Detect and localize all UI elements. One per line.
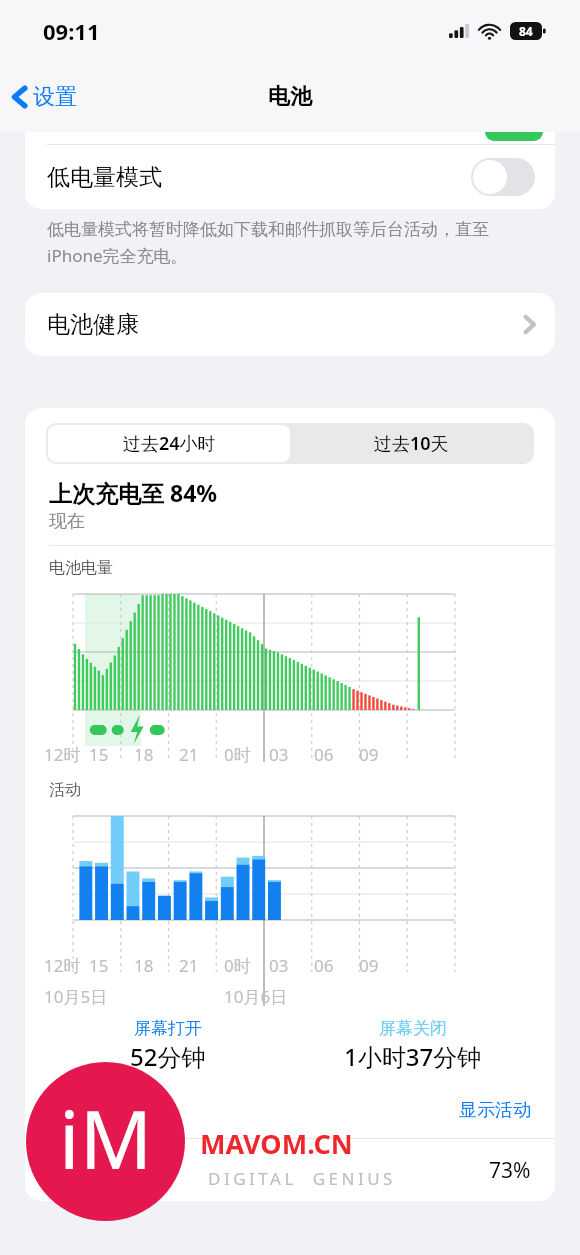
staticText: 12时 [44,954,81,977]
staticText: DIGITAL GENIUS [208,1167,396,1190]
staticText: 03 [269,743,289,766]
button[interactable]: 设置 [0,75,91,119]
button[interactable]: 过去24小时 [48,425,290,462]
staticText: 低电量模式 [47,163,162,192]
staticText: 06 [314,954,334,977]
staticText: 21 [179,954,199,977]
button[interactable]: 显示活动 [435,1095,555,1126]
staticText: 21 [179,743,199,766]
button[interactable]: 低电量模式开关 [471,158,535,196]
staticText: 84 [519,23,533,39]
staticText: 上次充电至 84% [49,477,218,508]
staticText: 屏幕关闭 [379,1018,447,1039]
staticText: 电池电量 [49,558,113,578]
staticText: 电池健康 [47,310,139,339]
staticText: iM [59,1083,153,1192]
staticText: 09 [359,743,379,766]
staticText: 1小时37分钟 [344,1040,482,1073]
staticText: 电池 [268,83,312,111]
staticText: 设置 [33,83,77,111]
button[interactable]: 低电量模式 [25,145,555,209]
staticText: 12时 [44,743,81,766]
staticText: 18 [134,954,154,977]
staticText: 09:11 [43,16,100,46]
staticText: 52分钟 [130,1040,206,1073]
staticText: 15 [89,954,109,977]
staticText: 09 [359,954,379,977]
button[interactable]: 微信 [25,1139,555,1201]
staticText: 低电量模式将暂时降低如下载和邮件抓取等后台活动，直至 iPhone完全充电。 [47,219,489,267]
staticText: 10月6日 [224,985,288,1008]
staticText: 过去10天 [374,431,449,456]
staticText: 现在 [49,510,85,533]
button[interactable]: 过去10天 [290,425,532,462]
staticText: 过去24小时 [123,431,216,456]
staticText: 18 [134,743,154,766]
staticText: 10月5日 [44,985,108,1008]
staticText: 活动 [49,780,81,800]
staticText: 73% [489,1156,531,1185]
staticText: 微信 [106,1157,148,1183]
staticText: MAVOM.CN [200,1125,353,1162]
staticText: 屏幕打开 [134,1018,202,1039]
staticText: 03 [269,954,289,977]
staticText: 15 [89,743,109,766]
staticText: 06 [314,743,334,766]
button[interactable]: 电池健康 [25,293,555,356]
staticText: 0时 [224,743,251,766]
staticText: 0时 [224,954,251,977]
